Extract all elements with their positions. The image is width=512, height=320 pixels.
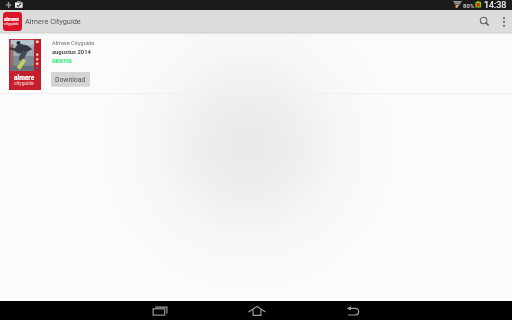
button[interactable]: almere <box>0 32 512 94</box>
staticText: almere <box>14 74 35 82</box>
staticText: 14:38 <box>484 0 507 10</box>
staticText: GRATIS <box>52 58 72 65</box>
button[interactable]: Recent apps <box>150 301 169 320</box>
staticText: Download <box>55 76 86 84</box>
button[interactable]: Search <box>474 10 496 32</box>
staticText: augustus 2014 <box>52 49 91 56</box>
staticText: Almere Cityguide <box>52 40 95 47</box>
button[interactable]: Download <box>51 72 90 87</box>
staticText: cityguide <box>14 80 34 86</box>
staticText: cityguide <box>4 22 19 26</box>
staticText: 80% <box>463 2 475 9</box>
button[interactable]: Home <box>247 301 266 320</box>
button[interactable]: More options <box>496 10 512 32</box>
staticText: Almere Cityguide <box>25 17 81 26</box>
button[interactable]: Back <box>343 301 362 320</box>
staticText: almere <box>4 17 19 23</box>
